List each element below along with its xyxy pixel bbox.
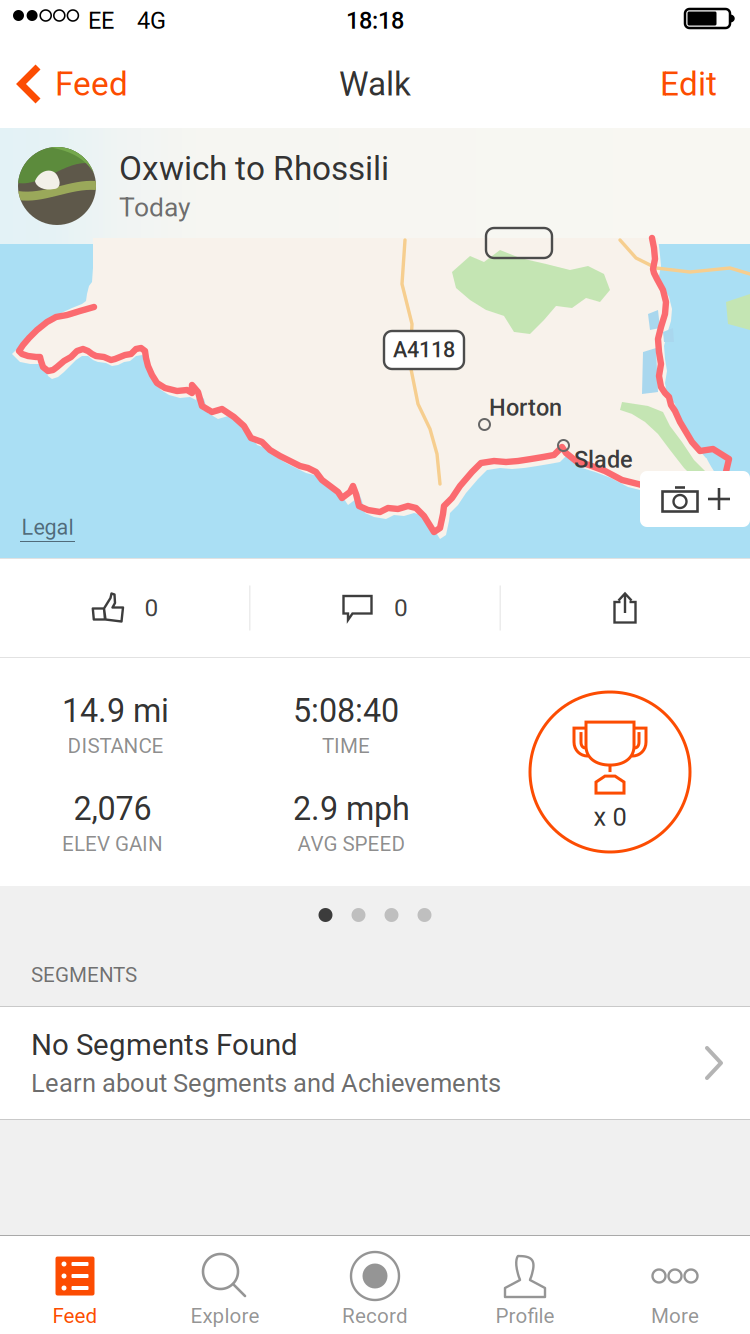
button[interactable]: Share (500, 559, 750, 657)
staticText: 14.9 mi (62, 692, 169, 730)
staticText: Today (119, 192, 191, 223)
staticText: Edit (660, 64, 717, 103)
button[interactable]: Profile (450, 1236, 600, 1334)
staticText: More (651, 1304, 699, 1328)
staticText: AVG SPEED (297, 832, 405, 856)
button[interactable]: Record (300, 1236, 450, 1334)
button[interactable]: More (600, 1236, 750, 1334)
staticText: 0 (144, 594, 158, 622)
staticText: Profile (495, 1304, 554, 1328)
staticText: Feed (55, 64, 128, 103)
staticText: Horton (489, 394, 562, 422)
staticText: 4G (137, 7, 166, 35)
button[interactable]: 0 (250, 559, 500, 657)
staticText: x 0 (593, 802, 626, 832)
staticText: Explore (190, 1304, 259, 1328)
staticText: 2,076 (73, 790, 151, 828)
staticText: 18:18 (346, 7, 404, 35)
button[interactable]: Edit (660, 40, 750, 128)
button[interactable]: Feed (0, 1236, 150, 1334)
staticText: No Segments Found (31, 1028, 298, 1062)
button[interactable]: Explore (150, 1236, 300, 1334)
staticText: Slade (574, 446, 633, 474)
staticText: 2.9 mph (293, 790, 410, 828)
staticText: Learn about Segments and Achievements (31, 1068, 501, 1098)
button[interactable]: 0 (0, 559, 250, 657)
staticText: DISTANCE (67, 734, 163, 758)
staticText: Walk (339, 64, 411, 103)
staticText: SEGMENTS (31, 963, 137, 987)
staticText: Feed (52, 1304, 97, 1328)
staticText: Oxwich to Rhossili (119, 149, 389, 188)
staticText: TIME (322, 734, 370, 758)
button[interactable]: No Segments Found (0, 1007, 750, 1119)
button[interactable]: Feed (0, 40, 128, 128)
button[interactable]: Add photo (640, 471, 750, 527)
staticText: A4118 (393, 337, 455, 363)
staticText: ELEV GAIN (62, 832, 163, 856)
staticText: 5:08:40 (293, 692, 399, 730)
staticText: 0 (394, 594, 408, 622)
staticText: Legal (21, 515, 73, 540)
staticText: Record (342, 1304, 408, 1328)
staticText: EE (88, 7, 114, 35)
